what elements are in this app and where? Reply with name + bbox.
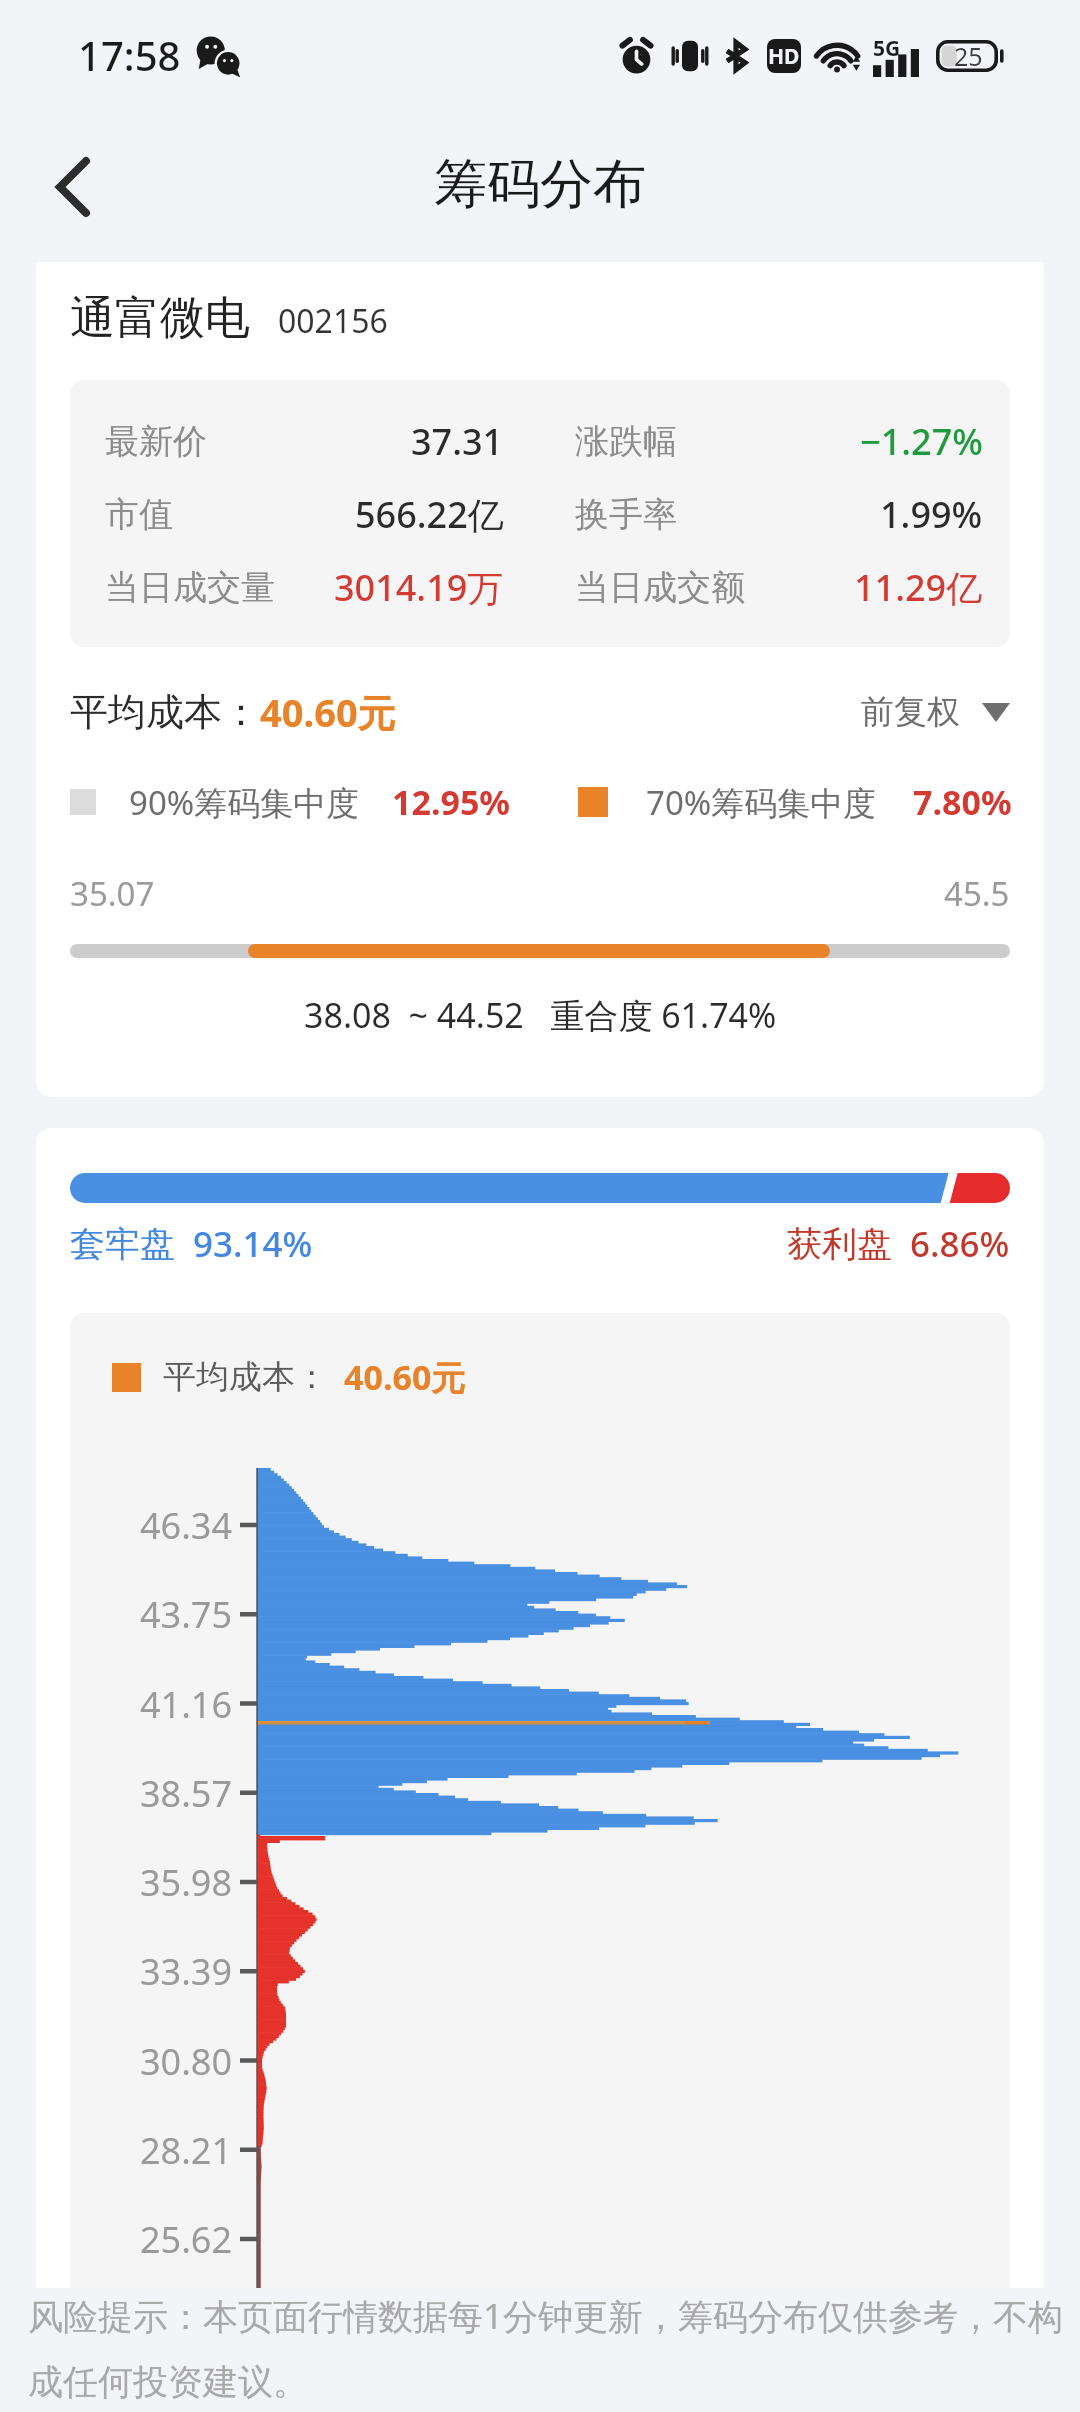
staticText: 筹码分布: [434, 151, 646, 218]
staticText: 70%筹码集中度: [646, 780, 877, 825]
staticText: 市值: [105, 493, 173, 536]
button[interactable]: Back: [18, 132, 128, 242]
staticText: 涨跌幅: [575, 420, 677, 463]
staticText: 17:58: [78, 28, 181, 82]
staticText: 3014.19万: [334, 563, 504, 612]
staticText: 换手率: [575, 493, 677, 536]
staticText: 43.75: [140, 1590, 233, 1639]
button[interactable]: 前复权: [861, 691, 1010, 733]
staticText: 35.98: [140, 1858, 233, 1907]
staticText: 41.16: [140, 1680, 233, 1729]
staticText: 40.60元: [260, 686, 396, 738]
staticText: 6.86%: [910, 1220, 1010, 1268]
staticText: HD: [768, 42, 800, 71]
staticText: 平均成本：: [70, 688, 260, 736]
staticText: 当日成交额: [575, 566, 745, 609]
staticText: 1.99%: [880, 490, 983, 539]
staticText: 28.21: [140, 2126, 233, 2175]
staticText: 35.07: [70, 871, 155, 916]
staticText: 37.31: [411, 417, 504, 466]
staticText: 002156: [278, 299, 388, 343]
staticText: 93.14%: [193, 1220, 313, 1268]
staticText: 套牢盘: [70, 1222, 175, 1266]
staticText: 11.29亿: [854, 563, 983, 612]
staticText: 通富微电: [70, 290, 250, 347]
staticText: 12.95%: [392, 779, 511, 825]
staticText: 566.22亿: [355, 490, 504, 539]
staticText: 7.80%: [913, 779, 1012, 825]
staticText: 33.39: [140, 1947, 233, 1996]
staticText: 25.62: [140, 2215, 233, 2264]
staticText: 当日成交量: [105, 566, 275, 609]
staticText: 38.08 ~ 44.52 重合度 61.74%: [304, 992, 777, 1038]
staticText: 前复权: [861, 691, 960, 733]
staticText: 平均成本：: [163, 1356, 328, 1398]
staticText: 25: [954, 39, 983, 73]
staticText: 90%筹码集中度: [129, 780, 360, 825]
staticText: 5G: [873, 34, 901, 63]
staticText: −1.27%: [860, 417, 983, 466]
staticText: 获利盘: [787, 1222, 892, 1266]
staticText: 45.5: [944, 871, 1010, 916]
staticText: 46.34: [140, 1501, 233, 1550]
staticText: 40.60元: [344, 1354, 466, 1400]
staticText: 最新价: [105, 420, 207, 463]
staticText: 38.57: [140, 1769, 233, 1818]
staticText: 30.80: [140, 2037, 233, 2086]
staticText: 成任何投资建议。: [28, 2360, 308, 2404]
staticText: 风险提示：本页面行情数据每1分钟更新，筹码分布仅供参考，不构: [28, 2292, 1064, 2340]
